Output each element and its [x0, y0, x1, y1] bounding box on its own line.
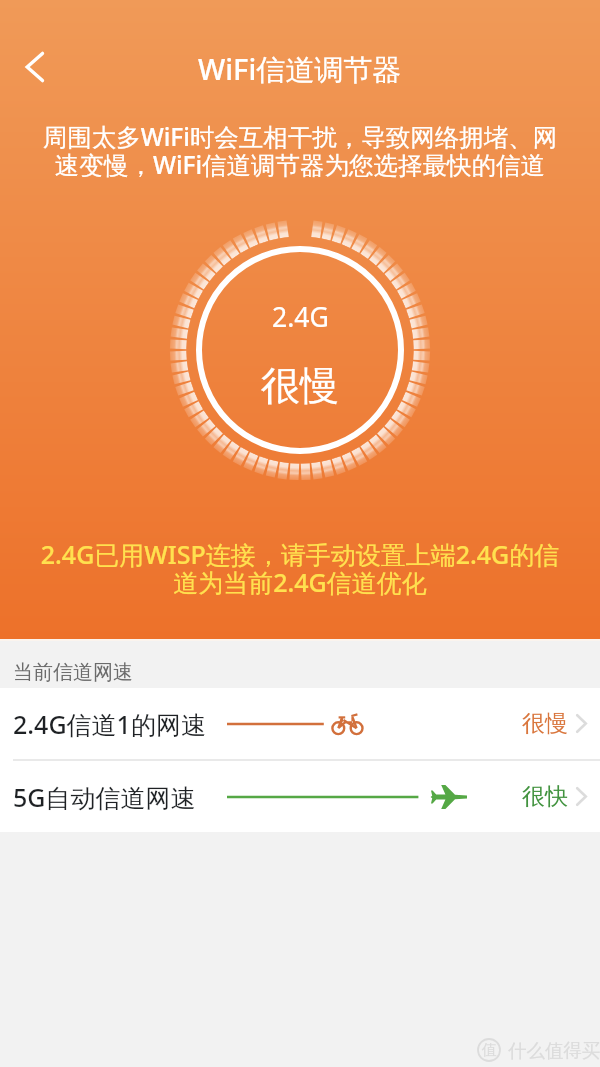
staticText: 2.4G已用WISP连接，请手动设置上端2.4G的信 道为当前2.4G信道优化	[0, 537, 600, 600]
button[interactable]: Back	[10, 42, 60, 92]
staticText: 什么值得买	[508, 1039, 600, 1062]
button[interactable]: 5G自动信道网速	[0, 761, 600, 832]
staticText: 很快	[522, 782, 568, 811]
staticText: 值	[482, 1041, 497, 1060]
staticText: 很慢	[261, 361, 339, 410]
button[interactable]: 2.4G信道1的网速	[0, 688, 600, 759]
staticText: 周围太多WiFi时会互相干扰，导致网络拥堵、网 速变慢，WiFi信道调节器为您选…	[0, 120, 600, 181]
staticText: 2.4G	[272, 299, 329, 335]
staticText: 5G自动信道网速	[13, 780, 196, 814]
staticText: 当前信道网速	[13, 660, 133, 685]
staticText: 2.4G信道1的网速	[13, 707, 206, 741]
staticText: 很慢	[522, 709, 568, 738]
staticText: WiFi信道调节器	[198, 49, 402, 89]
